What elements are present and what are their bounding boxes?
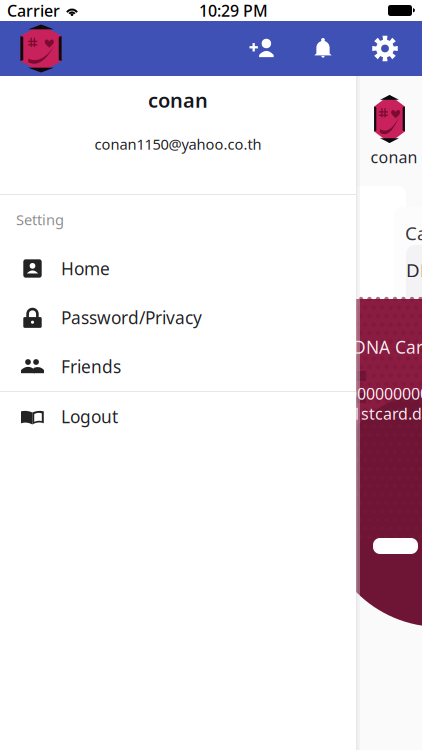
- staticText: conan: [148, 87, 208, 113]
- staticText: Carrier: [7, 0, 60, 21]
- staticText: DNA Card: [353, 335, 422, 358]
- staticText: Setting: [16, 210, 64, 229]
- staticText: conan1150@yahoo.co.th: [94, 134, 261, 154]
- staticText: DNA: [406, 258, 422, 282]
- staticText: Home: [61, 257, 110, 280]
- button[interactable]: Logout: [0, 392, 356, 441]
- staticText: 1stcard.dna: [352, 403, 422, 424]
- button[interactable]: Profile: [0, 21, 65, 76]
- button[interactable]: Password/Privacy: [0, 293, 356, 342]
- button[interactable]: Settings: [360, 21, 410, 76]
- button[interactable]: Add friend: [240, 21, 286, 76]
- staticText: conan: [370, 146, 417, 168]
- staticText: 10:29 PM: [199, 0, 268, 21]
- staticText: Friends: [61, 355, 121, 378]
- button[interactable]: Notifications: [286, 21, 360, 76]
- staticText: Logout: [61, 405, 118, 428]
- button[interactable]: Home: [0, 244, 356, 293]
- staticText: Password/Privacy: [61, 306, 202, 329]
- staticText: 000000000000: [348, 383, 422, 404]
- staticText: Card: [405, 221, 422, 245]
- button[interactable]: Friends: [0, 342, 356, 391]
